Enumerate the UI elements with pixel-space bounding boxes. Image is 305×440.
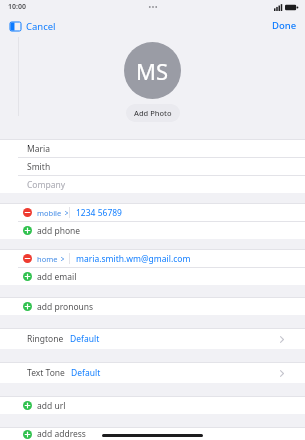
staticText: add phone [37, 225, 81, 237]
staticText: Text Tone [27, 367, 65, 379]
staticText: add url [37, 400, 66, 412]
staticText: Add Photo [134, 108, 172, 118]
staticText: Smith [27, 161, 51, 173]
staticText: 10:00 [8, 2, 26, 12]
button[interactable]: Company [0, 176, 305, 193]
button[interactable]: Text Tone [0, 363, 305, 383]
staticText: Maria [27, 143, 50, 155]
button[interactable]: Done [272, 19, 297, 32]
staticText: home [37, 254, 58, 264]
button[interactable]: add pronouns [0, 298, 305, 315]
button[interactable]: add address [0, 428, 305, 440]
button[interactable]: add url [0, 397, 305, 414]
button[interactable]: add phone [0, 222, 305, 239]
staticText: 1234 56789 [76, 207, 122, 219]
button[interactable]: Cancel [26, 20, 56, 33]
staticText: mobile [37, 208, 62, 218]
staticText: Default [70, 333, 100, 345]
button[interactable]: mobile [0, 204, 305, 221]
staticText: add address [37, 428, 86, 440]
staticText: Default [71, 367, 101, 379]
button[interactable]: Maria [0, 140, 305, 157]
staticText: maria.smith.wm@gmail.com [76, 253, 191, 265]
button[interactable]: Add Photo [126, 104, 180, 122]
staticText: Done [272, 19, 297, 32]
staticText: add email [37, 271, 77, 283]
staticText: add pronouns [37, 301, 94, 313]
button[interactable]: MS [124, 42, 181, 99]
button[interactable]: add email [0, 268, 305, 285]
staticText: MS [136, 56, 169, 86]
button[interactable]: Ringtone [0, 329, 305, 349]
staticText: Cancel [26, 20, 56, 33]
button[interactable]: Toggle sidebar [6, 17, 24, 35]
button[interactable]: home [0, 250, 305, 267]
staticText: Ringtone [27, 333, 64, 345]
staticText: Company [27, 179, 66, 191]
button[interactable]: Smith [0, 158, 305, 175]
